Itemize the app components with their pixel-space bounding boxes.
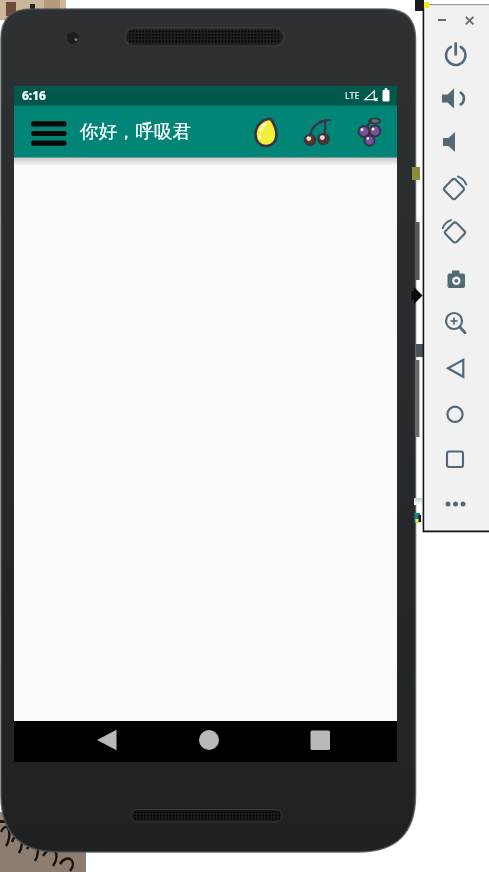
button[interactable] xyxy=(180,720,240,762)
button[interactable] xyxy=(438,303,474,339)
button[interactable] xyxy=(288,720,348,762)
staticText: LTE xyxy=(345,89,360,101)
button[interactable] xyxy=(438,170,474,206)
button[interactable] xyxy=(349,110,391,154)
button[interactable] xyxy=(438,39,474,75)
button[interactable] xyxy=(24,108,72,154)
button[interactable] xyxy=(438,351,474,387)
button[interactable] xyxy=(438,82,474,118)
button[interactable] xyxy=(438,214,474,250)
button[interactable] xyxy=(438,487,474,523)
staticText: 6:16 xyxy=(22,87,46,103)
button[interactable] xyxy=(246,110,288,154)
button[interactable] xyxy=(438,127,474,163)
button[interactable] xyxy=(80,720,140,762)
button[interactable] xyxy=(438,396,474,432)
staticText: 你好，呼吸君 xyxy=(80,120,191,143)
button[interactable] xyxy=(297,110,339,154)
button[interactable] xyxy=(438,441,474,477)
button[interactable] xyxy=(438,259,474,295)
